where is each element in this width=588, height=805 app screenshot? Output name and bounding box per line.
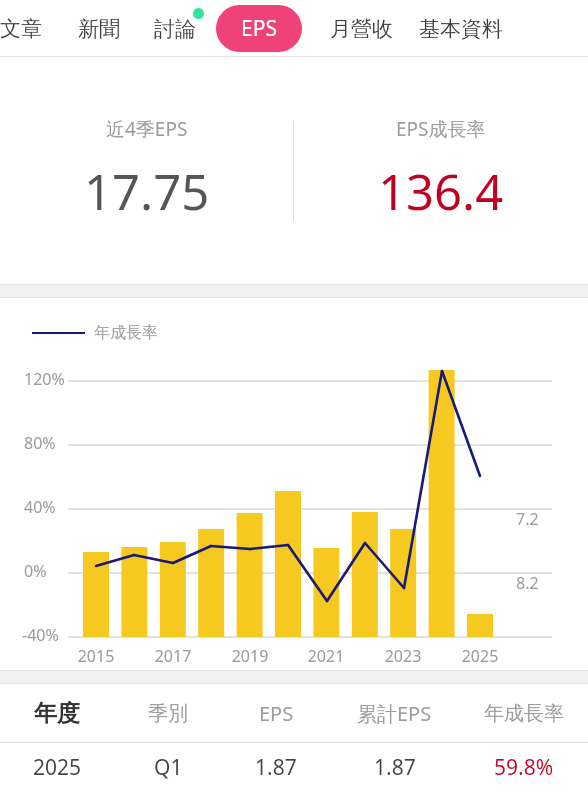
staticText: 季別 [148, 701, 188, 726]
staticText: 近4季EPS [106, 116, 188, 142]
staticText: 120% [24, 368, 65, 390]
staticText: 7.2 [516, 508, 539, 530]
staticText: 年成長率 [94, 323, 158, 343]
button[interactable]: 討論 [154, 16, 196, 42]
button[interactable]: EPS [216, 5, 302, 52]
staticText: -40% [22, 624, 59, 646]
staticText: 80% [24, 432, 56, 454]
staticText: EPS [259, 700, 294, 727]
button[interactable]: EPS成長率 [294, 116, 588, 225]
staticText: 8.2 [516, 572, 539, 594]
button[interactable]: 文章 [0, 16, 42, 42]
staticText: 2017 [147, 645, 199, 667]
button[interactable]: 月營收 [330, 16, 393, 42]
staticText: EPS成長率 [396, 116, 486, 142]
staticText: 40% [24, 496, 56, 518]
staticText: 基本資料 [419, 16, 503, 42]
staticText: 1.87 [255, 753, 297, 782]
staticText: 月營收 [330, 16, 393, 42]
staticText: 1.87 [374, 753, 416, 782]
staticText: 2023 [377, 645, 429, 667]
button[interactable]: 近4季EPS [0, 116, 293, 225]
staticText: 2025 [454, 645, 506, 667]
staticText: 17.75 [84, 158, 210, 225]
staticText: 59.8% [494, 753, 554, 782]
staticText: 累計EPS [357, 700, 432, 727]
staticText: 0% [24, 560, 47, 582]
staticText: 年度 [34, 699, 80, 728]
staticText: 2015 [70, 645, 122, 667]
staticText: 2025 [33, 753, 82, 782]
staticText: 2019 [224, 645, 276, 667]
staticText: 2021 [300, 645, 352, 667]
staticText: 136.4 [378, 158, 504, 225]
button[interactable]: 新聞 [78, 16, 120, 42]
staticText: 文章 [0, 16, 42, 42]
staticText: Q1 [154, 753, 183, 782]
staticText: EPS [241, 14, 277, 43]
staticText: 年成長率 [484, 701, 564, 726]
button[interactable]: 2025 [0, 743, 588, 791]
staticText: 討論 [154, 16, 196, 42]
staticText: 新聞 [78, 16, 120, 42]
button[interactable]: 基本資料 [419, 16, 503, 42]
